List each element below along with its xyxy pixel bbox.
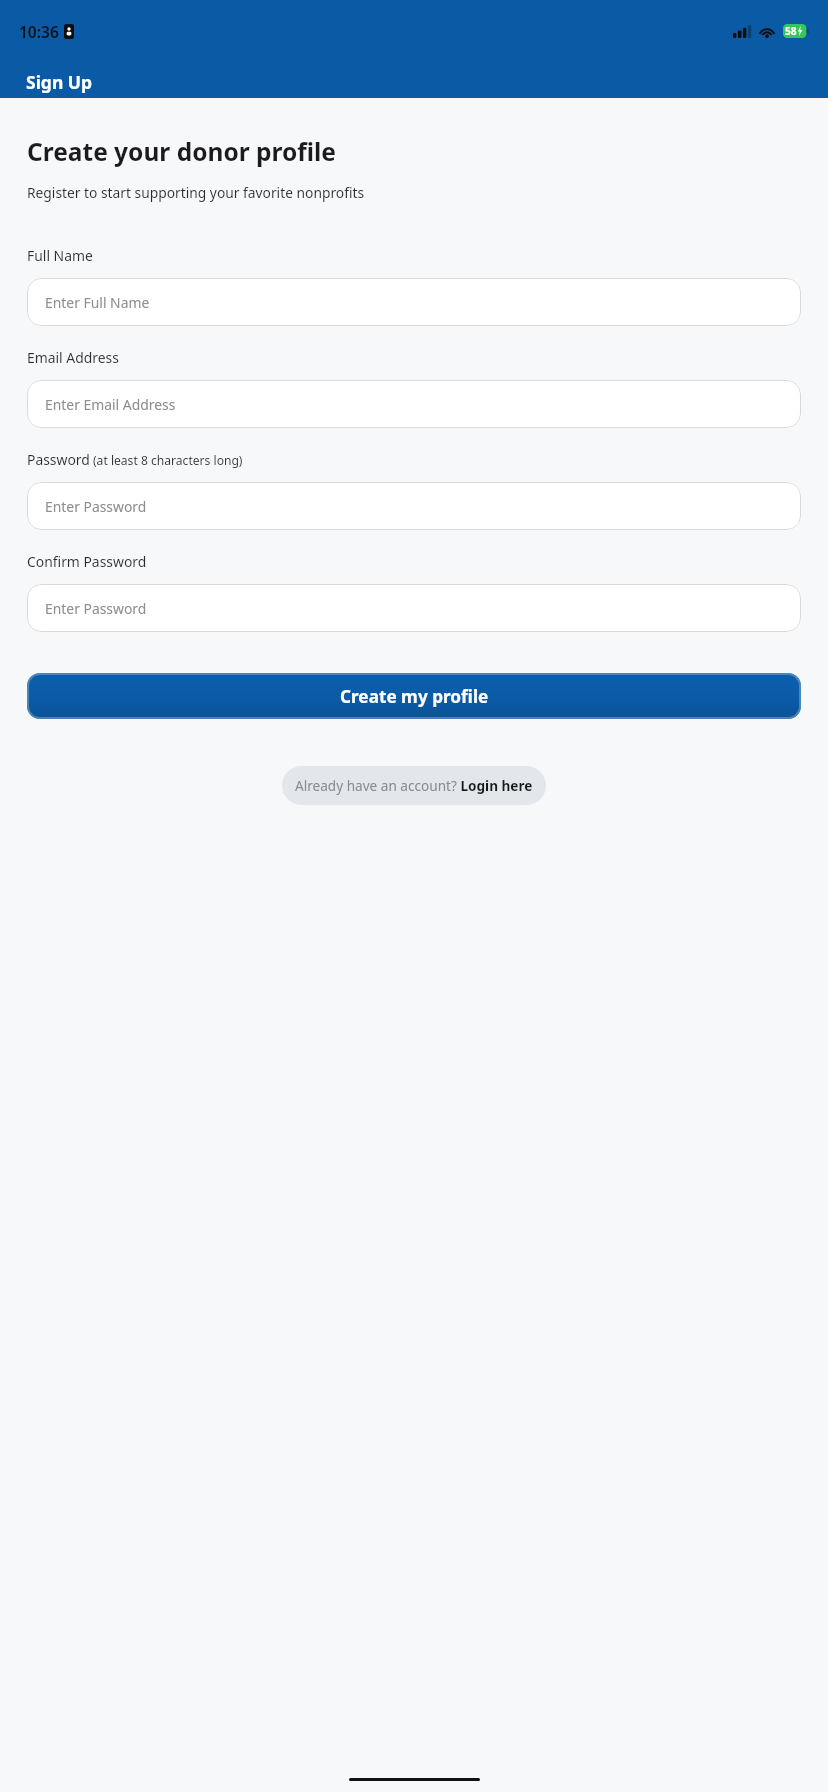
staticText: Confirm Password [27,552,147,571]
button[interactable]: Enter Password [27,482,801,530]
button[interactable]: Login here [282,766,546,805]
button[interactable]: Enter Email Address [27,380,801,428]
staticText: 10:36 [19,21,59,42]
staticText: Password (at least 8 characters long) [27,450,243,469]
staticText: 58 [785,24,797,38]
staticText: Email Address [27,348,119,367]
button[interactable]: Enter Full Name [27,278,801,326]
button[interactable]: Create my profile [27,673,801,719]
button[interactable]: Enter Password [27,584,801,632]
staticText: Full Name [27,246,93,265]
staticText: Create my profile [340,685,489,708]
staticText: Enter Password [45,497,147,516]
staticText: Sign Up [26,70,93,94]
staticText: Enter Full Name [45,293,150,312]
staticText: Register to start supporting your favori… [27,183,365,202]
staticText: Enter Password [45,599,147,618]
staticText: Already have an account? Login here [295,776,533,795]
staticText: Enter Email Address [45,395,176,414]
staticText: Create your donor profile [27,135,336,168]
